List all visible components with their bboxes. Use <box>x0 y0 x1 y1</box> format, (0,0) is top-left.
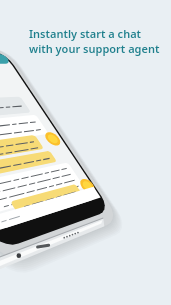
staticText: Instantly start a chat <box>29 26 142 41</box>
staticText: with your support agent <box>29 41 160 56</box>
